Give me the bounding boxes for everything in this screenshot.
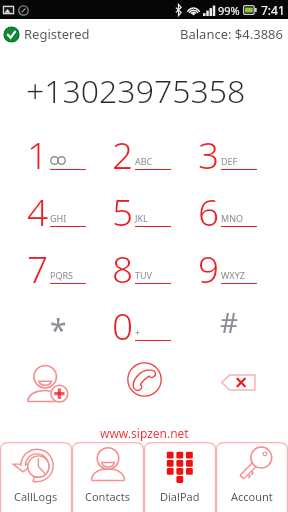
button[interactable]: 3 xyxy=(186,127,272,184)
staticText: 7 xyxy=(27,243,49,293)
button[interactable]: # xyxy=(186,298,272,355)
button[interactable]: Backspace xyxy=(192,355,288,412)
button[interactable]: 7 xyxy=(15,241,100,298)
staticText: www.sipzen.net xyxy=(100,425,189,441)
staticText: 3 xyxy=(198,129,220,179)
button[interactable]: DialPad xyxy=(144,442,216,512)
staticText: 0 xyxy=(112,300,134,350)
staticText: 1 xyxy=(27,129,49,179)
staticText: 7:41 xyxy=(261,2,285,18)
staticText: 9 xyxy=(198,243,220,293)
staticText: MNO xyxy=(221,212,244,224)
button[interactable]: * xyxy=(15,298,100,355)
staticText: DialPad xyxy=(160,489,200,504)
staticText: TUV xyxy=(135,269,152,281)
button[interactable]: 4 xyxy=(15,184,100,241)
button[interactable]: 1 xyxy=(15,127,100,184)
staticText: + xyxy=(135,326,141,338)
staticText: CallLogs xyxy=(14,489,58,504)
staticText: Account xyxy=(231,489,273,504)
button[interactable]: CallLogs xyxy=(0,442,72,512)
staticText: 2 xyxy=(112,129,134,179)
button[interactable]: Contacts xyxy=(72,442,144,512)
button[interactable]: 8 xyxy=(100,241,186,298)
staticText: 99% xyxy=(218,3,240,18)
button[interactable]: Call xyxy=(96,355,192,412)
staticText: GHI xyxy=(50,212,67,224)
button[interactable]: Account xyxy=(216,442,288,512)
staticText: 4 xyxy=(27,186,49,236)
staticText: 5 xyxy=(112,186,134,236)
button[interactable]: 0 xyxy=(100,298,186,355)
button[interactable]: 5 xyxy=(100,184,186,241)
staticText: 8 xyxy=(112,243,134,293)
staticText: +13023975358 xyxy=(26,69,246,113)
staticText: ABC xyxy=(135,155,153,167)
staticText: 6 xyxy=(198,186,220,236)
staticText: Registered xyxy=(24,25,90,43)
staticText: WXYZ xyxy=(221,269,245,281)
staticText: Contacts xyxy=(85,489,131,504)
staticText: DEF xyxy=(221,155,238,167)
staticText: PQRS xyxy=(50,269,74,281)
button[interactable]: 6 xyxy=(186,184,272,241)
button[interactable]: 2 xyxy=(100,127,186,184)
staticText: # xyxy=(220,303,239,341)
button[interactable]: Add contact xyxy=(0,355,96,412)
staticText: Balance: $4.3886 xyxy=(180,25,283,43)
staticText: * xyxy=(50,309,67,350)
staticText: JKL xyxy=(135,212,148,224)
button[interactable]: 9 xyxy=(186,241,272,298)
